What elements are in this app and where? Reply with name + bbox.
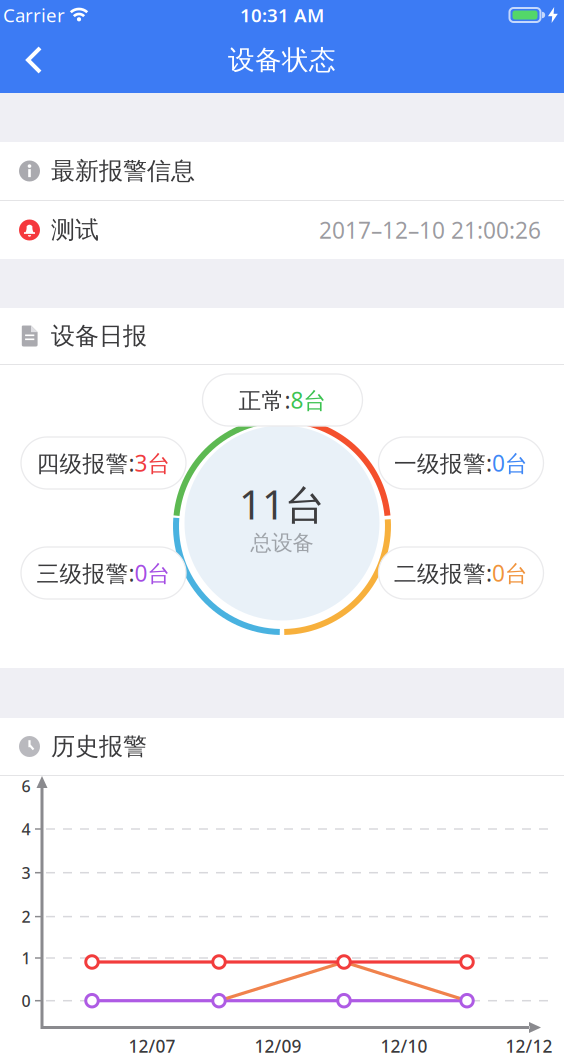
staticText: 2 [21,906,30,927]
staticText: 12/12 [505,1034,552,1057]
staticText: 0台 [134,558,170,588]
staticText: 2017–12–10 21:00:26 [319,215,541,245]
staticText: 12/07 [128,1034,175,1057]
staticText: 三级报警: [36,558,134,588]
staticText: 正常: [238,385,290,415]
staticText: 3台 [134,448,170,478]
staticText: 设备日报 [51,321,147,351]
staticText: 最新报警信息 [51,156,195,186]
button[interactable]: Back [14,38,54,82]
staticText: 0台 [492,558,528,588]
staticText: 12/10 [380,1034,427,1057]
staticText: 二级报警: [394,558,492,588]
staticText: 8台 [290,385,326,415]
staticText: 11台 [239,477,325,530]
staticText: 4 [21,818,30,840]
staticText: 0台 [492,448,528,478]
staticText: 测试 [51,215,99,245]
staticText: 总设备 [250,530,313,556]
staticText: 历史报警 [51,732,147,761]
staticText: 3 [21,862,30,883]
staticText: 一级报警: [394,448,492,478]
staticText: 6 [21,775,30,797]
staticText: 10:31 AM [240,3,324,27]
staticText: 1 [21,947,30,969]
staticText: 0 [21,990,30,1011]
staticText: 12/09 [254,1034,301,1057]
staticText: 四级报警: [36,448,134,478]
staticText: 设备状态 [228,44,336,76]
button[interactable]: 测试 [0,201,564,259]
staticText: Carrier [3,3,65,27]
